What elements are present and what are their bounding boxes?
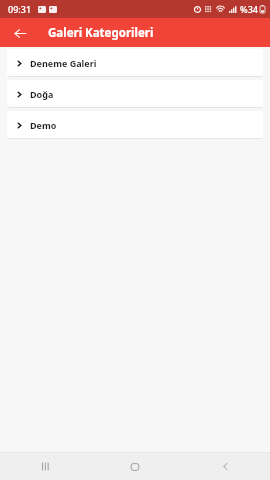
staticText: Doğa [30, 88, 54, 100]
staticText: Demo [30, 119, 57, 131]
staticText: 09:31 [8, 3, 32, 15]
button[interactable]: Back [180, 453, 270, 480]
button[interactable]: Home [90, 453, 180, 480]
button[interactable]: Doğa [7, 80, 263, 108]
staticText: Deneme Galeri [30, 57, 97, 69]
button[interactable]: Deneme Galeri [7, 49, 263, 77]
button[interactable]: Recent apps [0, 453, 90, 480]
staticText: %34 [240, 3, 258, 15]
button[interactable]: Back [8, 21, 32, 45]
button[interactable]: Demo [7, 111, 263, 139]
staticText: Galeri Kategorileri [48, 25, 154, 41]
